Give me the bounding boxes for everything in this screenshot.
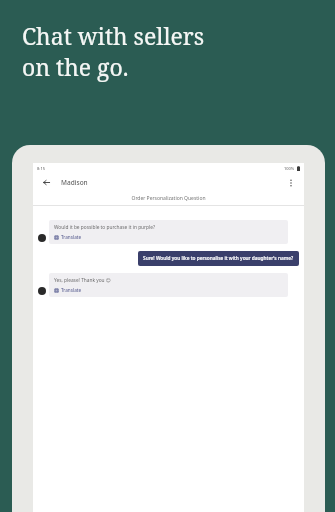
button[interactable]: Back xyxy=(40,176,53,189)
staticText: Would it be possible to purchase it in p… xyxy=(54,224,156,231)
staticText: Translate xyxy=(61,287,82,293)
button[interactable]: Sure! Would you like to personalise it w… xyxy=(93,251,299,266)
button[interactable]: Yes, please! Thank you 😊 xyxy=(38,273,288,297)
staticText: on the go. xyxy=(22,51,129,82)
button[interactable]: Translate xyxy=(54,287,82,293)
staticText: Madison xyxy=(61,178,88,187)
staticText: Translate xyxy=(61,234,82,240)
staticText: Sure! Would you like to personalise it w… xyxy=(143,255,294,262)
button[interactable]: Would it be possible to purchase it in p… xyxy=(38,220,288,244)
button[interactable]: Translate xyxy=(54,234,82,240)
staticText: Order Personalization Question xyxy=(131,195,206,202)
staticText: Yes, please! Thank you 😊 xyxy=(54,277,111,284)
button[interactable]: More options xyxy=(284,176,297,189)
staticText: Chat with sellers xyxy=(22,20,205,51)
staticText: 100% xyxy=(284,166,295,171)
staticText: 8:15 xyxy=(37,166,45,171)
